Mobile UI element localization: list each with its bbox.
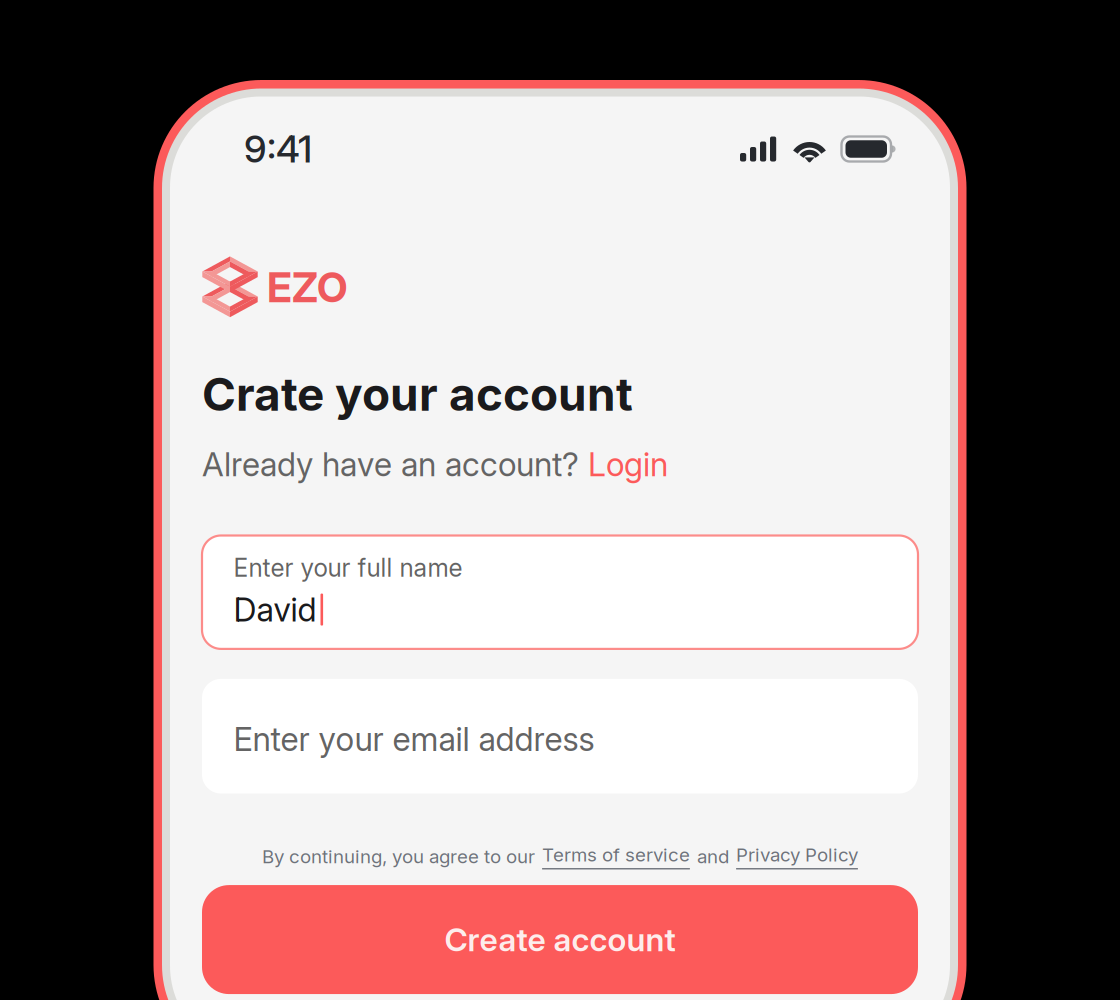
button[interactable]: Login: [588, 445, 668, 484]
staticText: By continuing, you agree to our: [262, 845, 535, 868]
staticText: Login: [588, 445, 668, 484]
staticText: Crate your account: [202, 366, 633, 422]
staticText: Create account: [444, 920, 675, 959]
staticText: Already have an account?: [202, 445, 579, 484]
staticText: 9:41: [244, 126, 312, 172]
staticText: EZO: [267, 263, 347, 312]
staticText: Enter your email address: [233, 719, 594, 759]
button[interactable]: Enter your full name: [202, 535, 918, 649]
staticText: and: [697, 845, 729, 868]
button[interactable]: Privacy Policy: [736, 843, 858, 869]
button[interactable]: Create account: [202, 885, 918, 994]
staticText: Terms of service: [542, 843, 690, 866]
button[interactable]: Terms of service: [542, 843, 690, 869]
staticText: Enter your full name: [233, 553, 462, 583]
staticText: David: [233, 590, 316, 629]
staticText: Privacy Policy: [736, 843, 858, 866]
button[interactable]: Enter your email address: [202, 679, 918, 793]
